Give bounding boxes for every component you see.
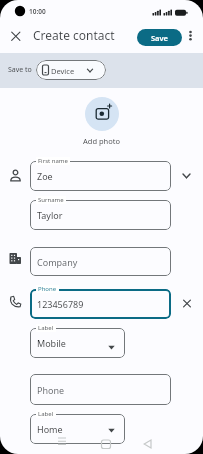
button[interactable]: Save — [137, 29, 182, 46]
staticText: Create contact — [33, 27, 115, 43]
staticText: Surname — [38, 196, 64, 204]
button[interactable]: Phone — [30, 374, 171, 405]
staticText: Home — [37, 423, 63, 435]
button[interactable] — [85, 97, 119, 131]
button[interactable] — [180, 296, 194, 310]
button[interactable] — [179, 170, 194, 185]
button[interactable] — [143, 436, 157, 450]
button[interactable]: Taylor — [30, 200, 171, 230]
staticText: Save — [151, 33, 169, 43]
button[interactable]: Home — [30, 414, 125, 444]
staticText: Phone — [38, 285, 57, 293]
button[interactable] — [36, 60, 106, 80]
button[interactable] — [7, 27, 24, 44]
staticText: Phone — [37, 384, 65, 396]
staticText: 10:00 — [29, 7, 46, 16]
staticText: Taylor — [37, 209, 63, 221]
staticText: Save to — [8, 65, 32, 75]
button[interactable] — [48, 436, 66, 450]
button[interactable] — [186, 28, 197, 44]
button[interactable]: 123456789 — [30, 289, 171, 319]
staticText: First name — [38, 157, 68, 165]
staticText: Add photo — [83, 136, 120, 146]
button[interactable]: Zoe — [30, 161, 171, 191]
staticText: Label — [38, 410, 54, 418]
staticText: Company — [37, 256, 78, 268]
staticText: Zoe — [37, 170, 53, 182]
button[interactable] — [98, 436, 113, 450]
button[interactable]: Mobile — [30, 328, 125, 358]
staticText: Mobile — [37, 337, 66, 349]
staticText: Label — [38, 324, 54, 332]
staticText: 123456789 — [37, 298, 84, 310]
button[interactable]: Company — [30, 247, 171, 276]
staticText: Device — [51, 66, 75, 76]
